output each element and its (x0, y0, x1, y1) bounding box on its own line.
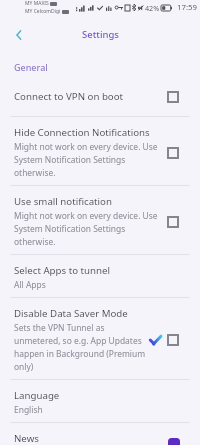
staticText: General (14, 61, 48, 73)
staticText: Might not work on every device. Use Syst… (14, 210, 160, 248)
button[interactable]: Language (0, 380, 200, 422)
staticText: English (14, 404, 43, 416)
button[interactable]: Select Apps to tunnel (0, 255, 200, 297)
staticText: Use small notification (14, 195, 112, 208)
staticText: Might not work on every device. Use Syst… (14, 141, 160, 179)
staticText: MY MAXIS (25, 0, 49, 7)
staticText: Disable Data Saver Mode (14, 307, 128, 320)
staticText: 42% (145, 3, 160, 13)
staticText: Language (14, 389, 60, 402)
button[interactable]: Disable Data Saver Mode (0, 298, 200, 379)
staticText: Hide Connection Notifications (14, 126, 150, 139)
staticText: Settings (82, 28, 119, 41)
button[interactable]: News (0, 423, 200, 445)
staticText: All Apps (14, 279, 46, 291)
staticText: Select Apps to tunnel (14, 264, 110, 277)
button[interactable]: Use small notification (0, 186, 200, 254)
button[interactable]: Back (8, 24, 30, 46)
staticText: Connect to VPN on boot (14, 90, 124, 103)
button[interactable]: Hide Connection Notifications (0, 117, 200, 185)
button[interactable]: Connect to VPN on boot (0, 81, 200, 116)
staticText: News (14, 432, 39, 445)
staticText: MY CelcomDigi (25, 8, 61, 15)
staticText: 17:59 (177, 2, 197, 13)
staticText: Sets the VPN Tunnel as unmetered, so e.g… (14, 322, 148, 373)
